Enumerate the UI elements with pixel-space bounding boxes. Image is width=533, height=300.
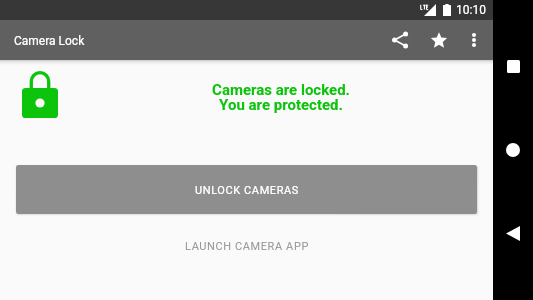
staticText: Camera Lock: [14, 34, 85, 48]
button[interactable]: Home: [493, 130, 533, 170]
staticText: UNLOCK CAMERAS: [195, 184, 299, 197]
button[interactable]: Recent apps: [493, 46, 533, 86]
staticText: LAUNCH CAMERA APP: [185, 240, 309, 253]
staticText: Cameras are locked. You are protected.: [212, 81, 350, 114]
button[interactable]: More options: [456, 20, 492, 60]
button[interactable]: Share: [382, 20, 418, 60]
button[interactable]: Back: [493, 213, 533, 253]
button[interactable]: UNLOCK CAMERAS: [16, 165, 477, 214]
button[interactable]: Favorite: [421, 20, 457, 60]
staticText: 10:10: [456, 3, 486, 17]
button[interactable]: LAUNCH CAMERA APP: [177, 228, 317, 262]
